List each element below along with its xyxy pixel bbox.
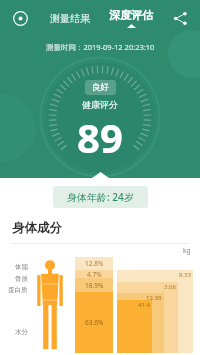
staticText: 41.4 (138, 301, 150, 309)
staticText: 测量结果 (50, 12, 90, 25)
staticText: 蛋白质 (8, 286, 28, 294)
staticText: 健康评分 (82, 99, 118, 110)
staticText: 身体年龄: 24岁 (67, 190, 134, 204)
staticText: 测量时间：2019-09-12 20:23:10 (46, 42, 155, 52)
button[interactable]: 测量结果 (45, 8, 95, 29)
staticText: 骨质 (15, 275, 28, 283)
staticText: 12.8% (85, 259, 104, 268)
staticText: 身体成分 (12, 220, 62, 236)
staticText: 水分 (15, 328, 28, 336)
staticText: 63.6% (85, 318, 104, 327)
staticText: 18.9% (85, 281, 104, 290)
staticText: 3.06 (164, 283, 176, 291)
button[interactable]: 深度评估 (107, 8, 155, 28)
staticText: 深度评估 (109, 8, 153, 22)
staticText: 体脂 (15, 263, 28, 271)
button[interactable]: Share (169, 7, 191, 29)
staticText: 4.7% (87, 270, 102, 278)
staticText: 89 (77, 110, 123, 164)
staticText: 良好 (92, 82, 109, 93)
staticText: kg (183, 246, 191, 255)
button[interactable]: 身体年龄: 24岁 (53, 186, 148, 208)
button[interactable]: History (9, 7, 31, 29)
staticText: 8.33 (179, 271, 191, 279)
staticText: 12.30 (146, 294, 162, 302)
